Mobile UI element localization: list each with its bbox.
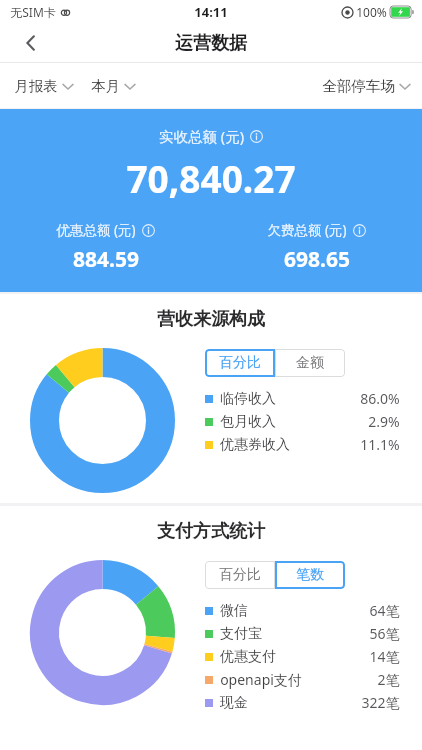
button[interactable]: 欠费总额 (元) <box>267 221 366 239</box>
staticText: 优惠总额 (元) <box>56 221 136 239</box>
staticText: 月报表 <box>14 77 58 95</box>
staticText: 14:11 <box>194 3 228 21</box>
staticText: 笔数 <box>296 566 324 584</box>
staticText: 2.9% <box>368 412 400 431</box>
staticText: openapi支付 <box>220 670 302 689</box>
staticText: 14笔 <box>369 647 400 666</box>
staticText: 运营数据 <box>175 32 247 55</box>
staticText: 支付方式统计 <box>157 520 265 543</box>
staticText: 优惠券收入 <box>220 436 290 454</box>
staticText: 86.0% <box>360 389 400 408</box>
staticText: 百分比 <box>219 566 261 584</box>
staticText: 64笔 <box>369 601 400 620</box>
staticText: 无SIM卡 <box>10 4 56 20</box>
button[interactable]: 优惠总额 (元) <box>56 221 155 239</box>
staticText: 欠费总额 (元) <box>267 221 347 239</box>
staticText: 70,840.27 <box>126 153 296 203</box>
staticText: 884.59 <box>73 245 139 274</box>
staticText: 56笔 <box>369 624 400 643</box>
staticText: 微信 <box>220 602 248 620</box>
staticText: 包月收入 <box>220 413 276 431</box>
staticText: 2笔 <box>377 670 400 689</box>
button[interactable]: 金额 <box>275 349 345 377</box>
button[interactable]: 百分比 <box>205 561 275 589</box>
staticText: 金额 <box>296 354 324 372</box>
staticText: 现金 <box>220 694 248 712</box>
staticText: 698.65 <box>284 245 350 274</box>
button[interactable]: 百分比 <box>205 349 275 377</box>
staticText: 营收来源构成 <box>157 308 265 331</box>
staticText: 本月 <box>91 77 120 95</box>
button[interactable]: 全部停车场 <box>322 73 410 99</box>
button[interactable]: 笔数 <box>275 561 345 589</box>
button[interactable]: 实收总额 (元) <box>159 126 263 146</box>
button[interactable]: 本月 <box>91 73 135 99</box>
button[interactable]: 返回 <box>14 26 48 60</box>
staticText: 11.1% <box>360 435 400 454</box>
staticText: 实收总额 (元) <box>159 126 244 146</box>
staticText: 临停收入 <box>220 390 276 408</box>
button[interactable]: 月报表 <box>14 73 73 99</box>
staticText: 优惠支付 <box>220 648 276 666</box>
staticText: 百分比 <box>219 354 261 372</box>
staticText: 支付宝 <box>220 625 262 643</box>
staticText: 全部停车场 <box>322 77 395 95</box>
staticText: 100% <box>356 4 387 20</box>
staticText: 322笔 <box>361 693 400 712</box>
